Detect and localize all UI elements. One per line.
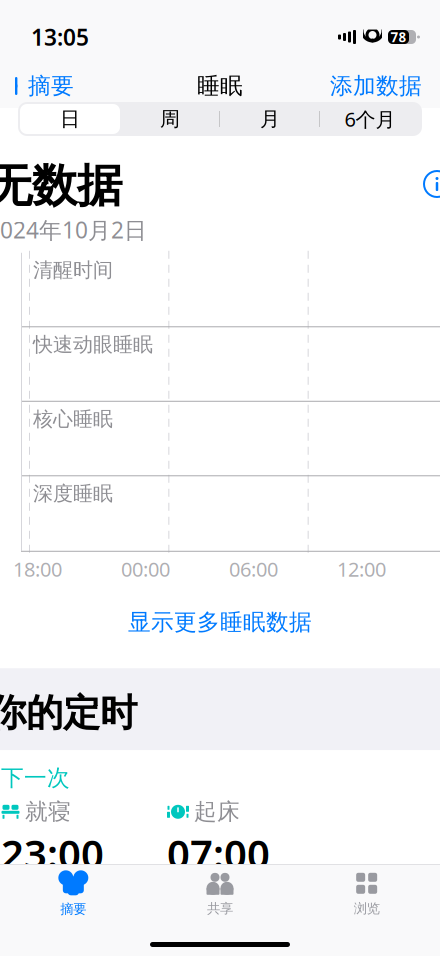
staticText: 下一次 [1,764,70,792]
staticText: 6个月 [344,106,395,132]
staticText: 月 [260,107,280,131]
button[interactable]: 显示更多睡眠数据 [0,590,440,654]
staticText: 明天 [167,882,207,906]
staticText: 浏览 [354,900,380,917]
staticText: 显示更多睡眠数据 [128,608,312,636]
button[interactable]: 添加数据 [330,66,440,106]
staticText: 2024年10月2日 [0,215,147,245]
staticText: 摘要 [28,72,74,100]
staticText: 睡眠 [197,72,243,100]
staticText: 78 [390,28,406,46]
staticText: 核心睡眠 [33,407,113,431]
staticText: 日 [60,107,80,131]
button[interactable]: 共享 [147,862,293,917]
staticText: 共享 [207,900,233,917]
staticText: 18:00 [13,556,62,582]
staticText: 就寝 [25,798,71,826]
staticText: 清醒时间 [33,258,113,282]
button[interactable]: 编辑 [0,919,440,956]
staticText: 无数据 [0,158,122,214]
staticText: 12:00 [337,556,386,582]
button[interactable]: 摘要 [0,862,147,917]
staticText: 13:05 [31,22,89,52]
button[interactable]: 日 [20,104,120,134]
button[interactable]: 摘要 [0,66,74,106]
staticText: 起床 [194,798,240,826]
staticText: 摘要 [60,901,86,917]
staticText: 06:00 [229,556,278,582]
button[interactable]: 浏览 [293,862,440,917]
staticText: 23:00 [1,827,104,880]
staticText: 00:00 [121,556,170,582]
staticText: 周 [160,107,180,131]
staticText: 07:00 [167,827,270,880]
staticText: 添加数据 [330,72,422,100]
button[interactable]: 6个月 [320,103,420,135]
staticText: 快速动眼睡眠 [33,332,153,357]
staticText: 深度睡眠 [33,481,113,506]
button[interactable]: 信息 [423,158,440,198]
button[interactable]: 周 [120,103,220,135]
button[interactable]: 月 [220,103,320,135]
staticText: 你的定时 [0,690,137,736]
